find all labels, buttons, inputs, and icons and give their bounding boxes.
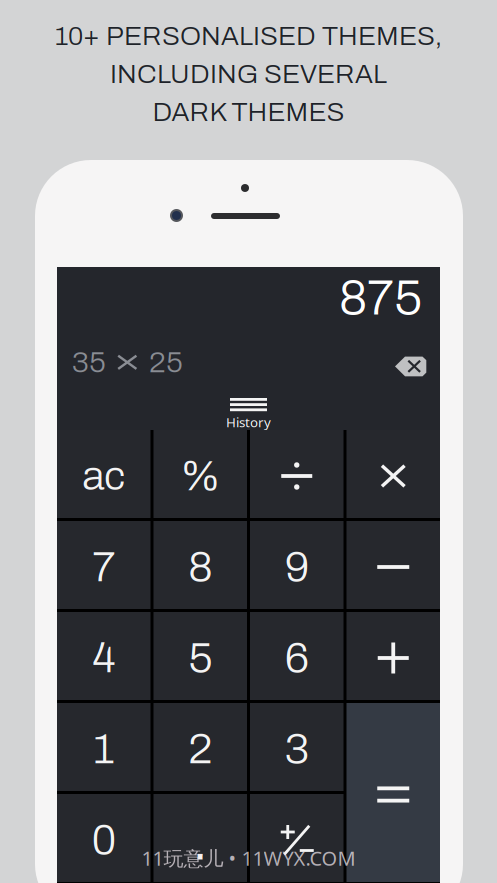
button[interactable]: Minus — [346, 521, 440, 609]
staticText: 35 — [72, 346, 106, 378]
button[interactable]: History — [213, 398, 283, 428]
staticText: 8 — [188, 544, 212, 590]
button[interactable]: Multiply — [346, 430, 440, 518]
button[interactable]: ac — [57, 430, 150, 518]
button[interactable]: Plus — [346, 612, 440, 700]
staticText: 3 — [285, 726, 309, 772]
button[interactable]: 4 — [57, 612, 150, 700]
staticText: 11玩意儿 • 11WYX.COM — [141, 845, 355, 871]
button[interactable]: Divide — [250, 430, 343, 518]
staticText: 1 — [93, 726, 114, 772]
staticText: 9 — [285, 544, 309, 590]
button[interactable]: 6 — [250, 612, 343, 700]
staticText: 5 — [188, 635, 212, 681]
staticText: 7 — [92, 544, 115, 590]
staticText: % — [180, 453, 220, 499]
staticText: ac — [82, 453, 125, 498]
button[interactable]: 7 — [57, 521, 150, 609]
staticText: 875 — [339, 271, 422, 325]
button[interactable]: Plus minus — [250, 794, 343, 882]
staticText: 6 — [285, 635, 309, 681]
staticText: History — [226, 413, 271, 431]
staticText: . — [192, 808, 208, 872]
staticText: 2 — [188, 726, 212, 772]
button[interactable]: 2 — [153, 703, 247, 791]
button[interactable]: % — [153, 430, 247, 518]
button[interactable]: 3 — [250, 703, 343, 791]
button[interactable]: . — [153, 794, 247, 882]
staticText: INCLUDING SEVERAL — [110, 59, 387, 88]
button[interactable]: 0 — [57, 794, 150, 882]
staticText: 0 — [92, 817, 116, 863]
button[interactable]: 1 — [57, 703, 150, 791]
button[interactable]: 5 — [153, 612, 247, 700]
staticText: DARK THEMES — [152, 97, 344, 126]
staticText: 25 — [149, 346, 183, 378]
button[interactable]: Backspace — [395, 356, 427, 377]
staticText: 10+ PERSONALISED THEMES, — [55, 21, 442, 50]
button[interactable]: 8 — [153, 521, 247, 609]
button[interactable]: Equals — [346, 703, 440, 882]
staticText: 4 — [92, 635, 115, 681]
button[interactable]: 9 — [250, 521, 343, 609]
